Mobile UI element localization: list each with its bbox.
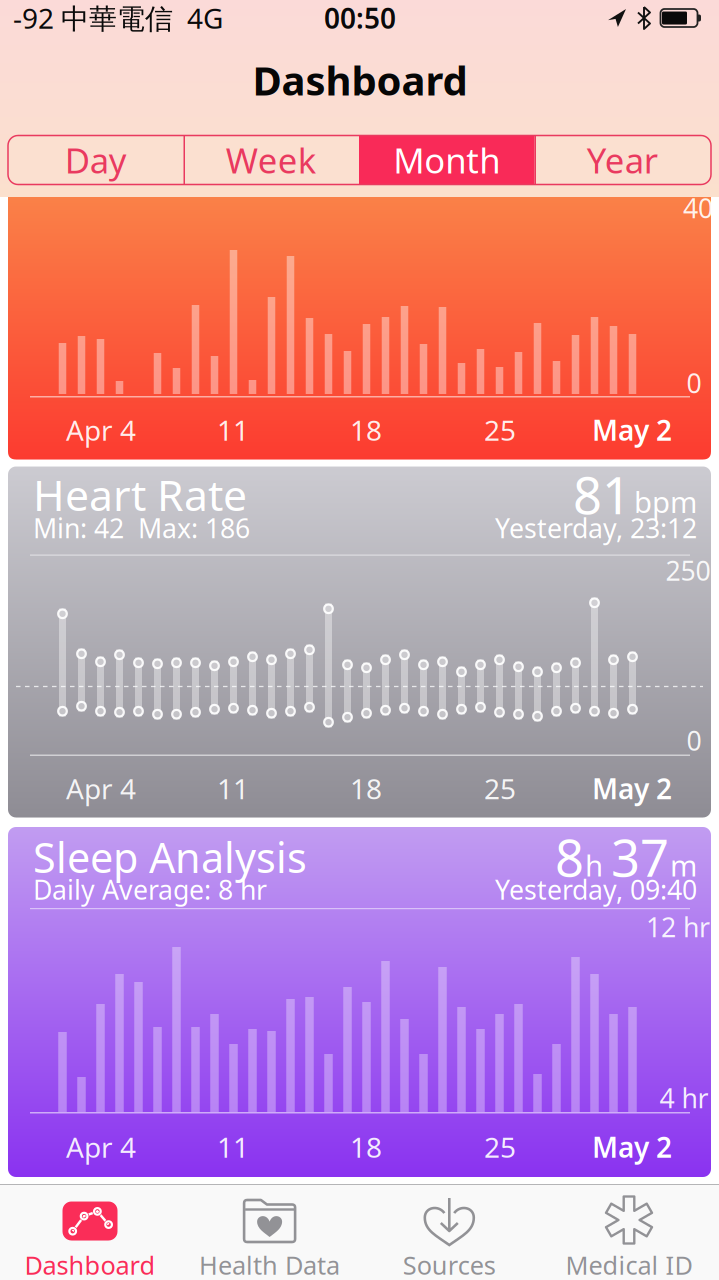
staticText: 8 (555, 823, 584, 891)
staticText: May 2 (592, 411, 672, 449)
button[interactable]: 40 (8, 197, 711, 459)
button[interactable]: Month (359, 135, 534, 184)
staticText: 12 hr (646, 909, 710, 945)
button[interactable]: Health Data (185, 1184, 355, 1280)
staticText: Month (393, 137, 500, 183)
staticText: -92 中華電信 4G (13, 0, 223, 37)
staticText: Medical ID (565, 1248, 692, 1280)
staticText: Daily Average: 8 hr (33, 872, 267, 907)
staticText: 250 (665, 553, 710, 588)
staticText: bpm (634, 482, 697, 521)
staticText: May 2 (592, 770, 672, 807)
button[interactable]: Sleep Analysis (8, 827, 711, 1177)
staticText: Apr 4 (66, 1128, 136, 1166)
staticText: May 2 (592, 1128, 672, 1166)
staticText: 25 (484, 1128, 516, 1166)
staticText: Apr 4 (66, 770, 136, 807)
staticText: Apr 4 (66, 411, 136, 449)
staticText: Yesterday, 09:40 (495, 872, 697, 907)
staticText: 11 (217, 411, 249, 449)
button[interactable]: Week (183, 135, 359, 184)
staticText: Week (226, 137, 317, 183)
staticText: Dashboard (252, 53, 467, 106)
staticText: 25 (484, 411, 516, 449)
button[interactable]: Sources (364, 1184, 534, 1280)
staticText: Year (587, 137, 658, 183)
staticText: 11 (217, 770, 249, 807)
staticText: Dashboard (24, 1248, 155, 1280)
button[interactable]: Heart Rate (8, 466, 711, 817)
staticText: 25 (484, 770, 516, 807)
staticText: 37 (611, 823, 669, 891)
staticText: 18 (350, 770, 382, 807)
staticText: 11 (217, 1128, 249, 1166)
staticText: Day (65, 137, 127, 183)
button[interactable]: Medical ID (544, 1184, 714, 1280)
button[interactable]: Dashboard (5, 1184, 175, 1280)
staticText: 4 hr (659, 1080, 708, 1116)
staticText: 18 (350, 411, 382, 449)
staticText: 0 (686, 723, 701, 758)
staticText: Yesterday, 23:12 (495, 510, 697, 546)
staticText: Heart Rate (33, 466, 247, 523)
staticText: 81 (573, 461, 631, 528)
staticText: Sleep Analysis (33, 830, 307, 884)
button[interactable]: Day (8, 135, 183, 184)
staticText: Sources (403, 1248, 496, 1280)
staticText: 0 (686, 365, 701, 401)
staticText: Min: 42 Max: 186 (33, 510, 250, 546)
staticText: 18 (350, 1128, 382, 1166)
staticText: Health Data (199, 1248, 340, 1280)
staticText: 00:50 (324, 0, 396, 37)
staticText: h (585, 846, 603, 885)
button[interactable]: Year (534, 135, 710, 184)
staticText: 40 (683, 190, 713, 226)
staticText: m (670, 846, 697, 885)
